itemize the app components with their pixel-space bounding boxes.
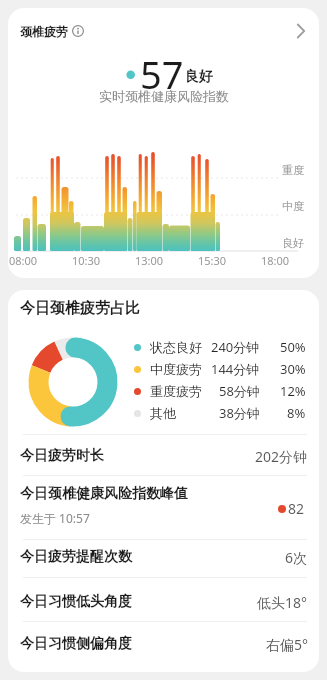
staticText: 15:30 [198, 253, 227, 267]
staticText: 其他 [150, 405, 176, 421]
staticText: 中度 [282, 199, 304, 213]
staticText: 重度疲劳 [150, 383, 202, 399]
staticText: 今日疲劳时长 [20, 447, 104, 465]
staticText: 57 [140, 48, 184, 98]
staticText: 右偏5° [266, 635, 308, 654]
button[interactable] [8, 539, 319, 577]
staticText: 中度疲劳 [150, 361, 202, 377]
button[interactable]: 颈椎疲劳 [8, 8, 319, 278]
staticText: 50% [280, 338, 306, 356]
button[interactable] [8, 621, 319, 662]
staticText: 良好 [282, 236, 304, 250]
staticText: 今日颈椎疲劳占比 [20, 299, 140, 318]
staticText: 38分钟 [219, 404, 260, 422]
staticText: 颈椎疲劳 [20, 24, 68, 39]
staticText: 良好 [185, 68, 213, 86]
button[interactable] [8, 577, 319, 621]
staticText: 状态良好 [150, 339, 202, 355]
staticText: 13:00 [135, 253, 164, 267]
staticText: 发生于 10:57 [20, 510, 90, 526]
staticText: 240分钟 [211, 338, 260, 356]
button[interactable] [8, 434, 319, 475]
staticText: 重度 [282, 163, 304, 177]
button[interactable] [8, 475, 319, 539]
staticText: 202分钟 [255, 447, 308, 466]
staticText: 12% [280, 382, 306, 400]
staticText: 今日颈椎健康风险指数峰值 [20, 485, 188, 503]
staticText: 08:00 [9, 253, 38, 267]
staticText: 今日习惯低头角度 [20, 593, 132, 611]
staticText: 实时颈椎健康风险指数 [99, 88, 229, 104]
staticText: 144分钟 [211, 360, 260, 378]
staticText: 58分钟 [219, 382, 260, 400]
staticText: 今日疲劳提醒次数 [20, 548, 132, 566]
staticText: 30% [280, 360, 306, 378]
staticText: 6次 [285, 548, 308, 567]
staticText: 18:00 [261, 253, 290, 267]
staticText: 低头18° [257, 593, 308, 612]
staticText: 8% [287, 404, 306, 422]
staticText: 10:30 [72, 253, 101, 267]
staticText: 82 [288, 499, 305, 518]
staticText: 今日习惯侧偏角度 [20, 635, 132, 653]
